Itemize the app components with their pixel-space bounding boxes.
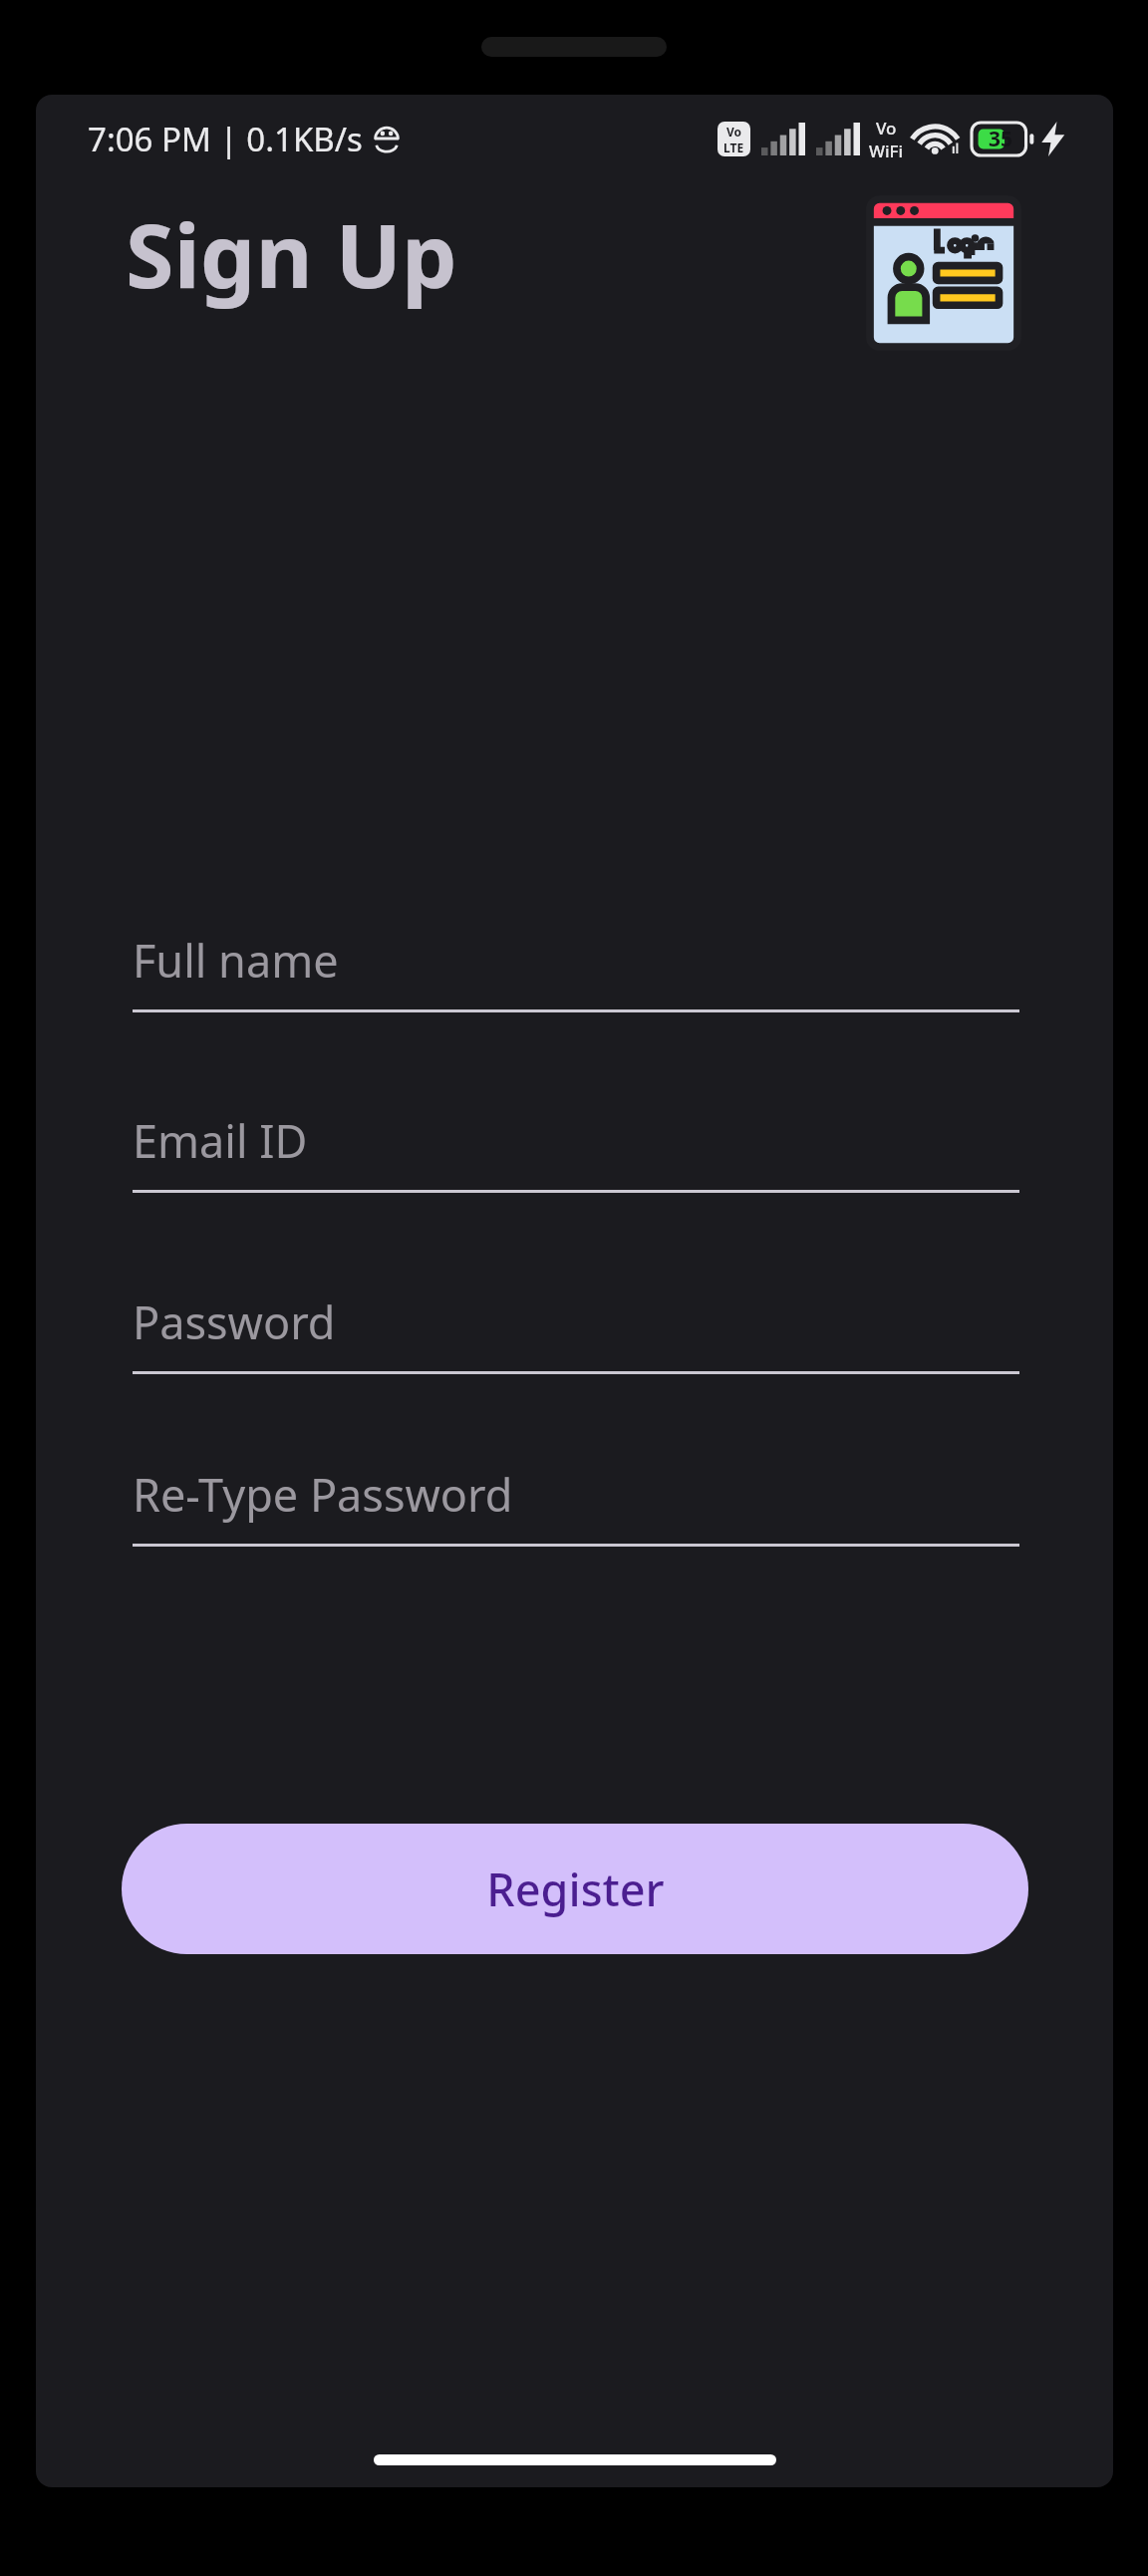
- button[interactable]: Register: [122, 1824, 1028, 1954]
- staticText: WiFi: [869, 140, 904, 160]
- staticText: Email ID: [133, 1110, 308, 1171]
- staticText: Register: [486, 1859, 665, 1919]
- staticText: 35: [989, 125, 1013, 153]
- staticText: Full name: [133, 930, 339, 991]
- staticText: Vo: [726, 124, 742, 140]
- staticText: Re-Type Password: [133, 1464, 513, 1525]
- staticText: 7:06 PM | 0.1KB/s: [88, 117, 363, 160]
- button[interactable]: Email ID: [133, 1088, 1019, 1193]
- staticText: Sign Up: [126, 194, 457, 314]
- button[interactable]: Re-Type Password: [133, 1442, 1019, 1547]
- button[interactable]: Login: [870, 199, 1017, 347]
- button[interactable]: Password: [133, 1270, 1019, 1374]
- button[interactable]: Full name: [133, 908, 1019, 1012]
- staticText: Password: [133, 1291, 336, 1352]
- staticText: LTE: [723, 140, 744, 155]
- staticText: Vo: [876, 117, 897, 140]
